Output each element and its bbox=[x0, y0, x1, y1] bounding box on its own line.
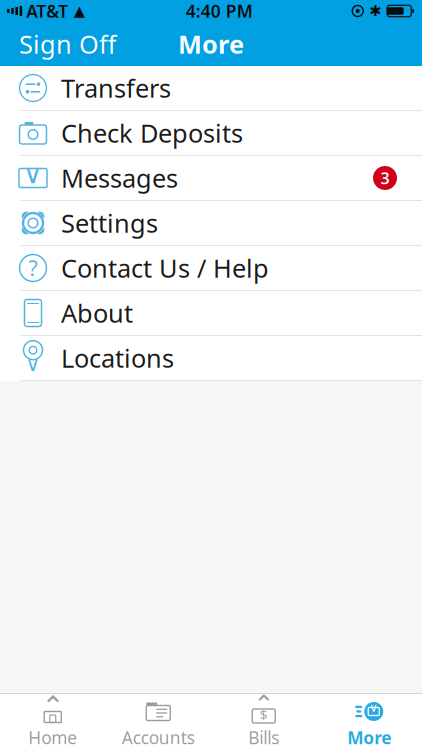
staticText: Settings bbox=[61, 206, 158, 240]
button[interactable]: Transfers bbox=[0, 66, 422, 111]
staticText: ⌃ bbox=[41, 690, 64, 722]
staticText: Home bbox=[28, 726, 77, 749]
button[interactable]: ⌃ bbox=[0, 694, 105, 750]
staticText: 4:40 PM bbox=[186, 0, 253, 22]
staticText: ⌃ bbox=[253, 690, 274, 719]
staticText: Bills bbox=[248, 726, 279, 749]
staticText: 3 bbox=[380, 167, 389, 189]
staticText: ∨ bbox=[23, 159, 43, 189]
button[interactable]: ∨ bbox=[0, 156, 422, 201]
staticText: ∨ bbox=[25, 353, 40, 375]
staticText: More bbox=[178, 27, 244, 61]
button[interactable]: ⌃ bbox=[211, 694, 316, 750]
staticText: $ bbox=[260, 706, 268, 723]
button[interactable]: About bbox=[0, 291, 422, 336]
staticText: ? bbox=[28, 254, 37, 282]
button[interactable]: ∨ bbox=[0, 336, 422, 381]
staticText: AT&T bbox=[26, 0, 68, 22]
staticText: Check Deposits bbox=[61, 116, 243, 150]
staticText: Contact Us / Help bbox=[61, 251, 269, 285]
staticText: More bbox=[347, 726, 391, 749]
staticText: Messages bbox=[61, 161, 178, 195]
button[interactable]: ∨ bbox=[316, 694, 422, 750]
staticText: ✱ bbox=[369, 3, 381, 19]
staticText: ∨ bbox=[369, 701, 378, 714]
staticText: About bbox=[61, 296, 133, 330]
staticText: Sign Off bbox=[19, 27, 116, 61]
staticText: Locations bbox=[61, 341, 174, 375]
button[interactable]: Sign Off bbox=[0, 16, 135, 72]
staticText: Accounts bbox=[122, 726, 195, 749]
button[interactable]: ? bbox=[0, 246, 422, 291]
button[interactable]: Check Deposits bbox=[0, 111, 422, 156]
staticText: ▲ bbox=[74, 3, 85, 19]
button[interactable]: Settings bbox=[0, 201, 422, 246]
staticText: Transfers bbox=[61, 71, 171, 105]
button[interactable]: Accounts bbox=[105, 694, 211, 750]
